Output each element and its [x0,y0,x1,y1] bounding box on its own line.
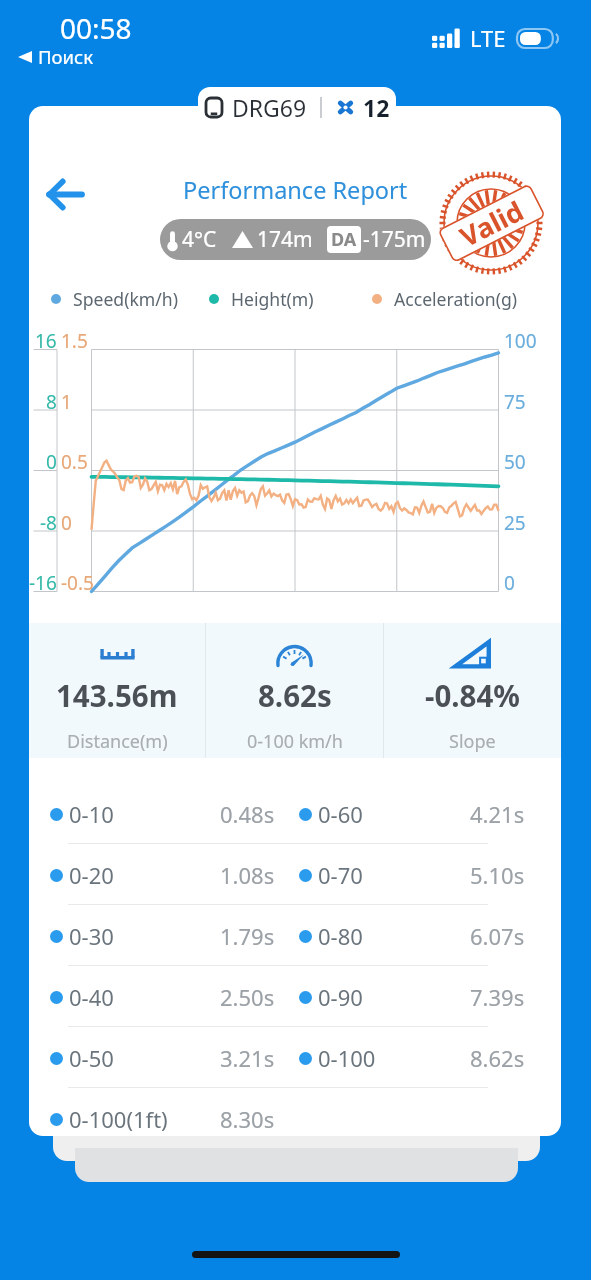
button[interactable]: 0-20 [29,844,561,905]
staticText: 00:58 [60,9,132,47]
staticText: 0.48s [220,799,275,829]
staticText: 8.62s [470,1043,525,1073]
button[interactable]: 0-10 [29,783,561,844]
button[interactable]: -0.84% [384,623,561,758]
staticText: 143.56m [56,675,178,715]
staticText: 0-100 km/h [247,729,343,754]
staticText: 3.21s [220,1043,275,1073]
staticText: 174m [257,225,313,254]
button[interactable]: 0-40 [29,966,561,1027]
staticText: 0-40 [69,982,114,1012]
staticText: Speed(km/h) [73,287,178,311]
staticText: 0-100(1ft) [69,1104,168,1134]
staticText: -0.84% [425,675,520,715]
staticText: -0.5 [61,570,94,596]
staticText: Slope [449,729,496,754]
staticText: 0-80 [318,921,363,951]
staticText: Height(m) [231,287,314,311]
staticText: 75 [504,389,526,415]
staticText: 6.07s [470,921,525,951]
button[interactable]: 0-50 [29,1027,561,1088]
staticText: 0-30 [69,921,114,951]
staticText: Distance(m) [67,729,168,754]
button[interactable]: 0-100(1ft) [29,1088,561,1136]
staticText: 100 [504,328,537,354]
staticText: 0.5 [61,449,88,475]
button[interactable]: DRG69 [198,87,396,128]
staticText: 12 [363,92,390,123]
button[interactable]: 143.56m [29,623,205,758]
button[interactable]: 0-30 [29,905,561,966]
button[interactable]: 8.62s [206,623,383,758]
staticText: 25 [504,510,526,536]
staticText: 1 [61,389,72,415]
staticText: 0-60 [318,799,363,829]
staticText: -16 [29,570,57,596]
staticText: 1.79s [220,921,275,951]
staticText: 1.5 [61,328,88,354]
staticText: 8.62s [258,675,332,715]
staticText: 0-50 [69,1043,114,1073]
staticText: 0 [46,449,57,475]
staticText: LTE [470,23,506,53]
staticText: 1.08s [220,860,275,890]
staticText: 2.50s [220,982,275,1012]
button[interactable]: Back [35,166,95,222]
staticText: Acceleration(g) [394,287,518,311]
staticText: 0-90 [318,982,363,1012]
staticText: 50 [504,449,526,475]
staticText: 0-20 [69,860,114,890]
staticText: -175m [363,225,426,254]
staticText: Performance Report [183,174,408,206]
staticText: -8 [40,510,57,536]
staticText: DRG69 [232,92,307,123]
staticText: Valid [453,191,530,255]
staticText: 16 [35,328,57,354]
staticText: 5.10s [470,860,525,890]
staticText: 4°C [182,225,217,254]
staticText: 0 [61,510,72,536]
staticText: 0-70 [318,860,363,890]
staticText: 7.39s [470,982,525,1012]
staticText: Поиск [38,44,93,69]
staticText: DA [331,227,357,252]
staticText: 4.21s [470,799,525,829]
staticText: 8.30s [220,1104,275,1134]
staticText: 0-10 [69,799,114,829]
staticText: 8 [46,389,57,415]
staticText: 0-100 [318,1043,376,1073]
staticText: 0 [504,570,515,596]
